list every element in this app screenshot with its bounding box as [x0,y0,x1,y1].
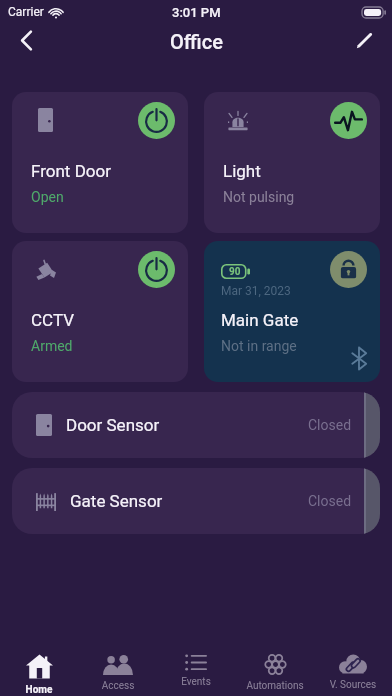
staticText: Automations [236,680,314,692]
staticText: Open [31,189,64,205]
staticText: Closed [308,417,352,433]
button[interactable]: 90 [204,241,380,382]
staticText: Door Sensor [66,415,160,435]
staticText: Events [157,676,235,688]
button[interactable]: Lock [330,251,367,288]
staticText: Mar 31, 2023 [221,284,291,298]
staticText: 3:01 PM [172,5,221,20]
button[interactable]: V. Sources [314,641,392,696]
staticText: Front Door [31,161,111,181]
button[interactable]: Pulse [204,92,380,233]
staticText: Light [223,161,261,181]
staticText: Closed [308,493,352,509]
button[interactable]: Pulse [330,102,367,139]
button[interactable]: Events [157,641,235,696]
staticText: Home [0,684,78,696]
button[interactable]: Home [0,641,78,696]
button[interactable]: Power [12,92,188,233]
staticText: 90 [229,266,241,278]
button[interactable]: Automations [236,641,314,696]
button[interactable]: Back [4,18,48,62]
button[interactable]: Power [138,102,175,139]
button[interactable]: Access [79,641,157,696]
staticText: Main Gate [221,310,299,330]
staticText: Not in range [221,338,297,354]
staticText: Access [79,680,157,692]
staticText: Gate Sensor [70,491,163,511]
staticText: Carrier [8,5,44,19]
staticText: CCTV [31,310,74,330]
button[interactable]: Edit [342,18,386,62]
staticText: V. Sources [314,679,392,691]
button[interactable]: Door Sensor [12,392,380,458]
staticText: Office [170,30,223,53]
staticText: Not pulsing [223,189,295,205]
button[interactable]: Gate Sensor [12,468,380,534]
button[interactable]: Power [138,251,175,288]
button[interactable]: Power [12,241,188,382]
staticText: Armed [31,338,73,354]
